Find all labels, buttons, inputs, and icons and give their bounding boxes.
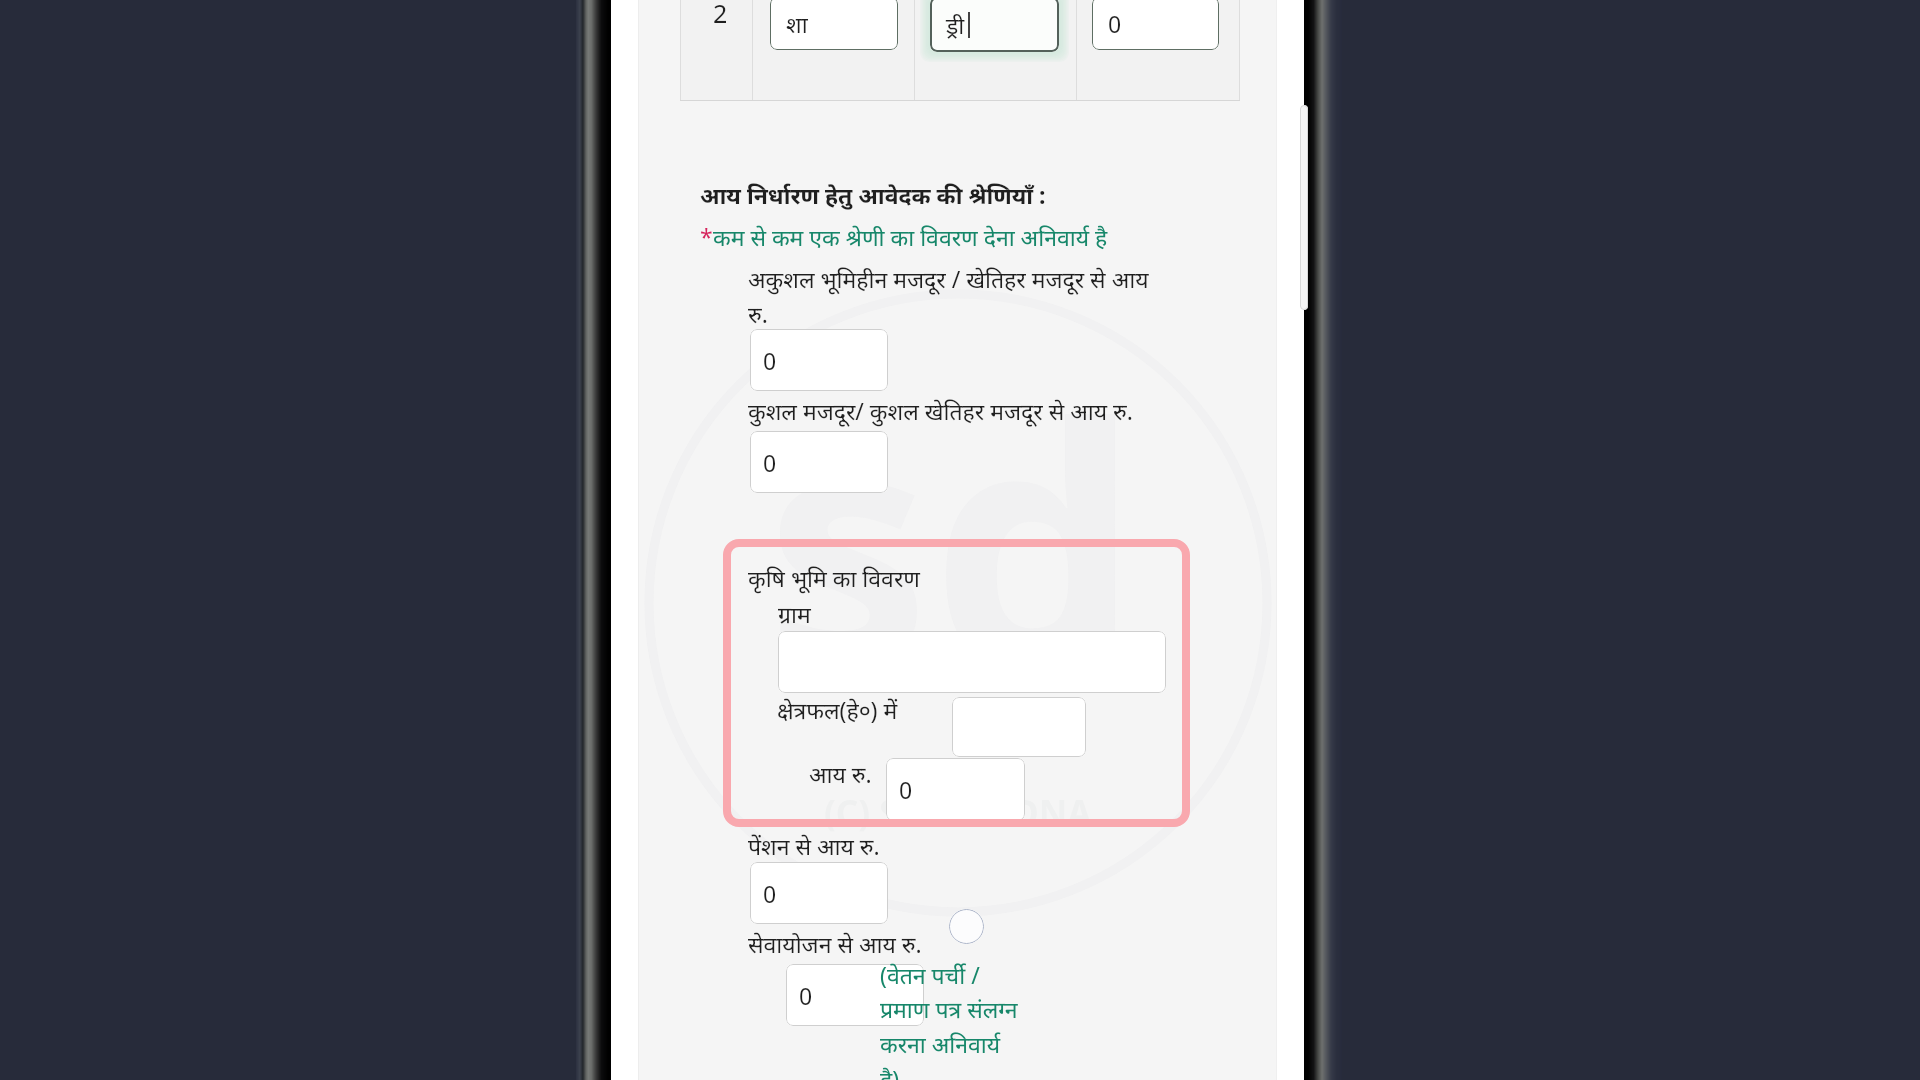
staticText: 0 xyxy=(799,980,813,1011)
staticText: क्षेत्रफल(हे०) में xyxy=(777,694,898,725)
button[interactable]: शा xyxy=(770,0,898,50)
button[interactable]: 0 xyxy=(750,329,888,391)
button[interactable] xyxy=(778,631,1166,693)
staticText: 0 xyxy=(899,774,913,805)
staticText: आय निर्धारण हेतु आवेदक की श्रेणियाँ : xyxy=(700,179,1046,210)
staticText: अकुशल भूमिहीन मजदूर / खेतिहर मजदूर से आय… xyxy=(748,263,1160,330)
button[interactable]: Touch pointer xyxy=(949,909,984,944)
staticText: 0 xyxy=(763,447,777,478)
staticText: सेवायोजन से आय रु. xyxy=(748,928,922,959)
staticText: 0 xyxy=(763,345,777,376)
staticText: (वेतन पर्ची / प्रमाण पत्र संलग्न करना अन… xyxy=(880,959,1018,1080)
staticText: आय रु. xyxy=(809,758,872,789)
staticText: 0 xyxy=(1108,8,1122,39)
staticText: (C) Sarkari DNA xyxy=(824,789,1092,837)
staticText: पेंशन से आय रु. xyxy=(748,830,880,861)
staticText: ड्री xyxy=(946,9,965,40)
button[interactable]: 0 xyxy=(750,431,888,493)
button[interactable]: 0 xyxy=(750,862,888,924)
staticText: कृषि भूमि का विवरण xyxy=(748,562,920,593)
staticText: कुशल मजदूर/ कुशल खेतिहर मजदूर से आय रु. xyxy=(748,395,1133,426)
staticText: शा xyxy=(786,8,808,39)
staticText: कम से कम एक श्रेणी का विवरण देना अनिवार्… xyxy=(713,221,1108,252)
button[interactable]: 0 xyxy=(1092,0,1219,50)
staticText: 2 xyxy=(713,0,728,30)
staticText: ग्राम xyxy=(778,598,811,629)
button[interactable]: 0 xyxy=(786,964,924,1026)
button[interactable] xyxy=(952,697,1086,757)
staticText: sd xyxy=(765,312,1140,761)
staticText: * xyxy=(700,221,713,252)
button[interactable]: ड्री xyxy=(930,0,1059,52)
button[interactable]: 0 xyxy=(886,758,1025,821)
button[interactable]: Scroll bar xyxy=(1300,105,1308,310)
staticText: 0 xyxy=(763,878,777,909)
